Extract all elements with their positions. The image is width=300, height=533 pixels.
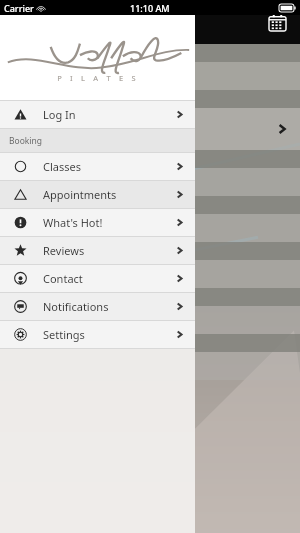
button[interactable]: Notifications bbox=[0, 293, 195, 320]
staticText: Classes bbox=[43, 159, 81, 174]
button[interactable]: Reviews bbox=[0, 237, 195, 264]
button[interactable]: Contact bbox=[0, 265, 195, 292]
staticText: P I L A T E S bbox=[57, 73, 139, 83]
staticText: Y 27 bbox=[2, 153, 20, 165]
staticText: What's Hot! bbox=[43, 215, 103, 230]
button[interactable]: Classes bbox=[0, 153, 195, 180]
staticText: 26 bbox=[2, 93, 13, 105]
staticText: 28 bbox=[2, 199, 13, 211]
button[interactable]: What's Hot! bbox=[0, 209, 195, 236]
button[interactable]: Appointments bbox=[0, 181, 195, 208]
staticText: Settings bbox=[43, 327, 85, 342]
staticText: Appointments bbox=[43, 187, 117, 202]
staticText: Carrier bbox=[4, 2, 34, 14]
button[interactable]: Log In bbox=[0, 101, 195, 128]
staticText: 30 bbox=[2, 291, 13, 303]
staticText: Notifications bbox=[43, 299, 109, 314]
staticText: Booking bbox=[9, 135, 43, 147]
staticText: Log In bbox=[43, 107, 76, 122]
button[interactable]: Settings bbox=[0, 321, 195, 348]
staticText: Contact bbox=[43, 271, 83, 286]
button[interactable]: Calendar bbox=[262, 7, 292, 37]
staticText: Reviews bbox=[43, 243, 85, 258]
staticText: 11:10 AM bbox=[130, 2, 170, 14]
staticText: 2 bbox=[2, 337, 8, 349]
